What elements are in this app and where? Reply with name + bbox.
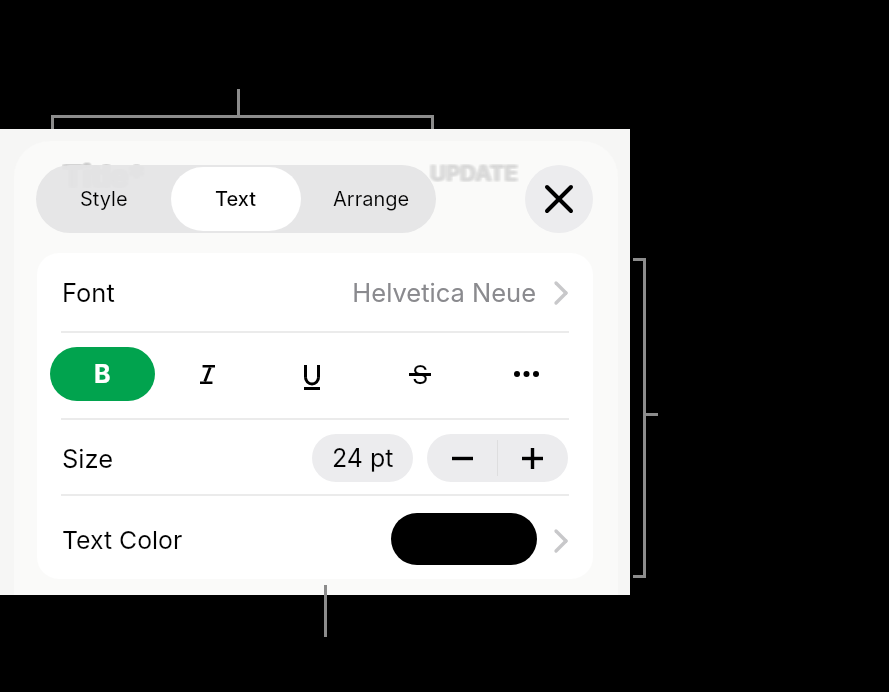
button[interactable]: 24 pt [312, 434, 413, 482]
button[interactable]: Text Color [37, 496, 593, 579]
staticText: UPDATE [431, 159, 519, 186]
staticText: Font [62, 277, 115, 308]
staticText: Style [80, 187, 128, 211]
staticText: UPDATE [429, 161, 517, 188]
button[interactable]: Arrange [304, 165, 439, 233]
staticText: UPDATE [432, 160, 520, 187]
button[interactable]: B [50, 347, 155, 401]
staticText: UPDATE [431, 161, 519, 188]
staticText: UPDATE [430, 159, 518, 186]
staticText: UPDATE [428, 160, 516, 187]
button[interactable]: More options [497, 347, 555, 401]
button[interactable]: Underline [283, 347, 341, 401]
staticText: 24 pt [332, 443, 394, 473]
staticText: Title* [64, 157, 146, 193]
staticText: UPDATE [432, 161, 520, 188]
staticText: Title* [61, 159, 143, 195]
staticText: Title* [62, 157, 144, 193]
button[interactable]: Font [37, 253, 593, 332]
staticText: S [412, 359, 429, 390]
staticText: Title* [64, 158, 146, 194]
staticText: Title* [65, 159, 147, 195]
staticText: UPDATE [429, 159, 517, 186]
staticText: Text [215, 187, 257, 211]
button[interactable]: Close [525, 165, 593, 233]
staticText: Helvetica Neue [286, 277, 536, 308]
staticText: Arrange [333, 187, 410, 211]
staticText: UPDATE [428, 161, 516, 188]
button[interactable]: Text [171, 167, 301, 231]
staticText: Title* [62, 159, 144, 195]
staticText: UPDATE [428, 159, 516, 186]
staticText: Title* [62, 158, 144, 194]
staticText: Title* [64, 159, 146, 195]
staticText: Title* [61, 158, 143, 194]
button[interactable]: Strikethrough [391, 347, 449, 401]
staticText: Title* [65, 158, 147, 194]
staticText: UPDATE [430, 160, 518, 187]
button[interactable]: Decrease font size [427, 434, 497, 482]
staticText: UPDATE [431, 160, 519, 187]
button[interactable]: Increase font size [497, 434, 568, 482]
staticText: UPDATE [429, 160, 517, 187]
staticText: Text Color [62, 525, 183, 555]
staticText: UPDATE [432, 159, 520, 186]
staticText: Title* [61, 157, 143, 193]
staticText: UPDATE [430, 161, 518, 188]
button[interactable]: Italic [178, 347, 236, 401]
staticText: Title* [63, 159, 145, 195]
staticText: B [94, 359, 111, 389]
button[interactable]: Style [36, 165, 171, 233]
staticText: Title* [63, 158, 145, 194]
staticText: Title* [63, 157, 145, 193]
staticText: Title* [65, 157, 147, 193]
staticText: Size [62, 443, 114, 474]
